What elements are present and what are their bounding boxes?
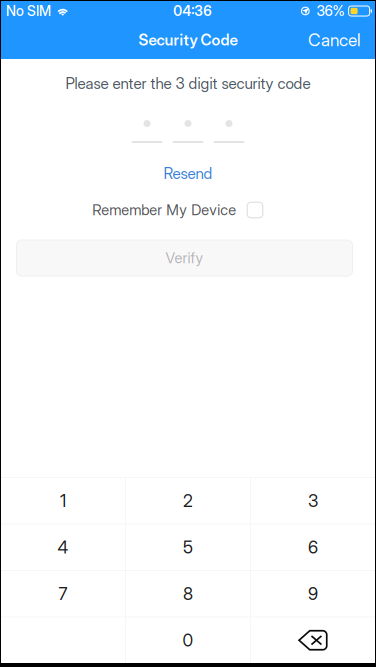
button[interactable]: 6	[251, 524, 375, 570]
button[interactable]: 5	[126, 524, 250, 570]
staticText: Security Code	[138, 31, 237, 49]
button[interactable]: 3	[251, 478, 375, 523]
button[interactable]: Remember My Device	[92, 199, 263, 221]
staticText: 7	[58, 583, 67, 604]
staticText: 4	[57, 537, 68, 558]
button[interactable]: 2	[126, 478, 250, 523]
staticText: 2	[183, 490, 193, 511]
staticText: 0	[182, 630, 193, 651]
button[interactable]: Cancel	[294, 21, 375, 58]
button[interactable]: 7	[1, 571, 125, 616]
button[interactable]: 0	[126, 617, 250, 663]
button[interactable]: 8	[126, 571, 250, 616]
staticText: 8	[183, 583, 193, 604]
staticText: Resend	[163, 164, 212, 183]
button[interactable]: 9	[251, 571, 375, 616]
button[interactable]: 1	[1, 478, 125, 523]
staticText: Cancel	[308, 29, 361, 50]
button[interactable]: Delete	[251, 617, 375, 663]
button[interactable]: Verify	[16, 240, 352, 276]
staticText: Remember My Device	[92, 201, 236, 219]
staticText: 9	[308, 583, 318, 604]
staticText: 1	[60, 490, 66, 511]
staticText: 04:36	[173, 2, 211, 19]
staticText: No SIM	[6, 2, 51, 19]
staticText: 6	[308, 537, 318, 558]
staticText: Please enter the 3 digit security code	[65, 74, 310, 93]
staticText: 5	[183, 537, 193, 558]
staticText: 36%	[317, 2, 345, 19]
staticText: 3	[308, 490, 318, 511]
staticText: Verify	[165, 249, 203, 267]
button[interactable]: Resend	[147, 159, 228, 188]
button[interactable]: 4	[1, 524, 125, 570]
